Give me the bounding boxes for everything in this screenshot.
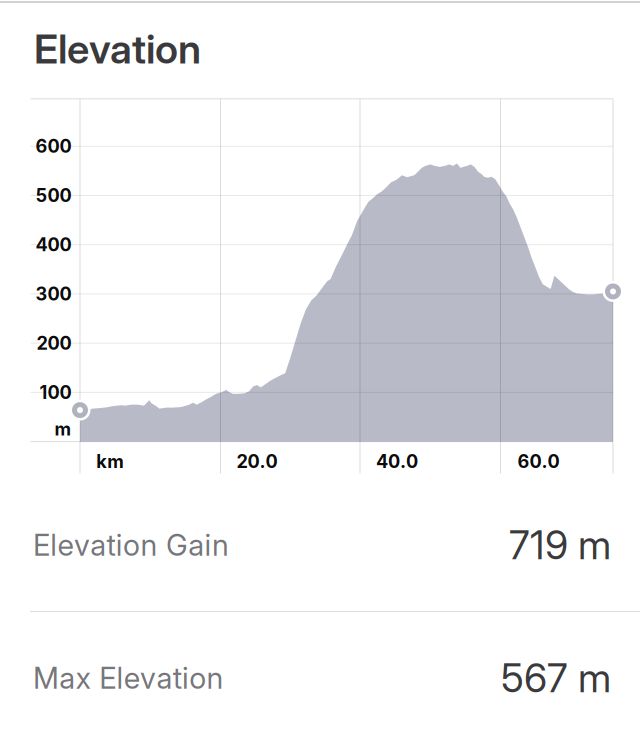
staticText: Elevation Gain	[33, 527, 229, 563]
staticText: km	[96, 450, 124, 472]
staticText: 500	[35, 184, 71, 206]
staticText: 567 m	[501, 654, 611, 702]
staticText: 400	[35, 234, 71, 256]
button[interactable]: Elevation Gain	[0, 479, 640, 611]
button[interactable]: Max Elevation	[0, 612, 640, 737]
staticText: 300	[35, 283, 71, 305]
staticText: 20.0	[236, 450, 277, 472]
staticText: 100	[39, 381, 71, 403]
staticText: 60.0	[517, 450, 559, 472]
staticText: Max Elevation	[33, 660, 224, 696]
staticText: m	[54, 418, 71, 440]
staticText: Elevation	[34, 25, 201, 73]
staticText: 600	[35, 135, 71, 157]
staticText: 719 m	[509, 521, 611, 569]
staticText: 200	[36, 332, 71, 354]
staticText: 40.0	[376, 450, 418, 472]
